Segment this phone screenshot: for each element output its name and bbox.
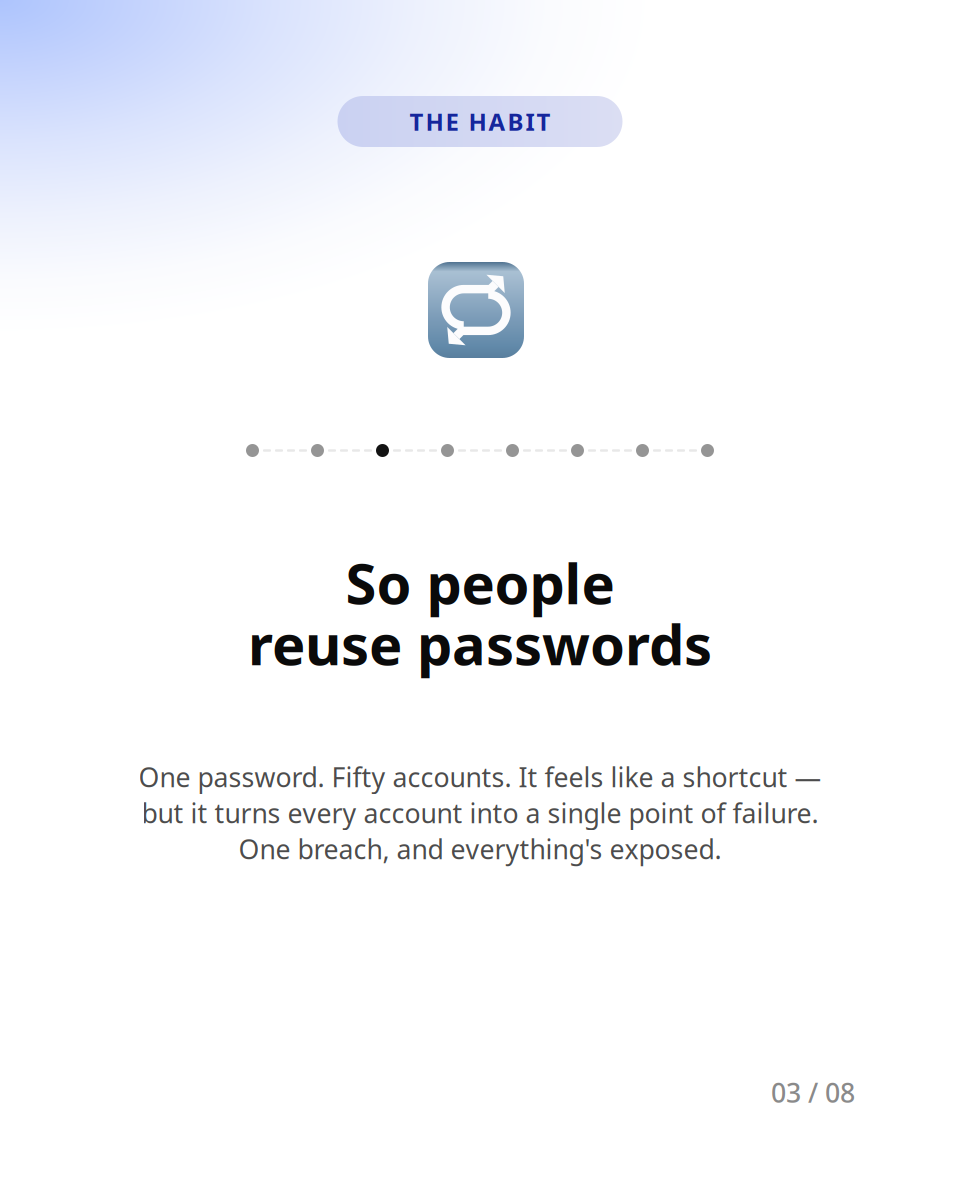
staticText: 03 / 08: [771, 1075, 855, 1110]
staticText: THE HABIT: [409, 106, 550, 137]
staticText: One password. Fifty accounts. It feels l…: [138, 759, 821, 795]
staticText: but it turns every account into a single…: [141, 795, 818, 831]
button[interactable]: THE HABIT: [337, 96, 622, 147]
staticText: One breach, and everything's exposed.: [238, 831, 721, 867]
staticText: reuse passwords: [248, 606, 712, 681]
staticText: So people: [345, 545, 614, 620]
